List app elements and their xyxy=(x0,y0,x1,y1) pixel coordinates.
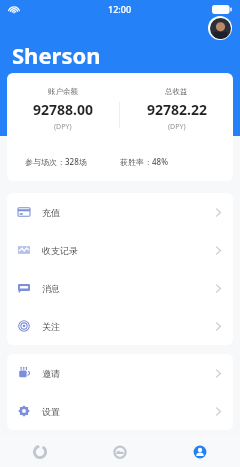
button[interactable]: Home xyxy=(0,436,80,467)
button[interactable]: Profile xyxy=(160,436,240,467)
staticText: 获胜率：48% xyxy=(120,156,215,167)
staticText: 92788.00 xyxy=(33,100,93,119)
staticText: (DPY) xyxy=(54,122,72,132)
staticText: 总收益 xyxy=(165,87,188,96)
staticText: (DPY) xyxy=(168,122,186,132)
button[interactable]: 充值 xyxy=(7,193,233,231)
button[interactable]: 收支记录 xyxy=(7,231,233,269)
button[interactable]: 关注 xyxy=(7,307,233,345)
button[interactable]: 账户余额 xyxy=(7,73,233,181)
staticText: 设置 xyxy=(42,406,60,417)
staticText: 参与场次：328场 xyxy=(25,156,120,167)
button[interactable]: 邀请 xyxy=(7,354,233,392)
staticText: 充值 xyxy=(42,207,60,218)
button[interactable]: 设置 xyxy=(7,392,233,430)
button[interactable]: Profile avatar xyxy=(208,16,232,40)
staticText: 收支记录 xyxy=(42,245,78,256)
staticText: 92782.22 xyxy=(147,100,207,119)
button[interactable]: 消息 xyxy=(7,269,233,307)
staticText: 消息 xyxy=(42,283,60,294)
staticText: 12:00 xyxy=(108,3,132,15)
staticText: 账户余额 xyxy=(48,87,78,96)
button[interactable]: Cloud xyxy=(80,436,160,467)
staticText: Sherson xyxy=(12,40,101,70)
staticText: 邀请 xyxy=(42,368,60,379)
staticText: 关注 xyxy=(42,321,60,332)
